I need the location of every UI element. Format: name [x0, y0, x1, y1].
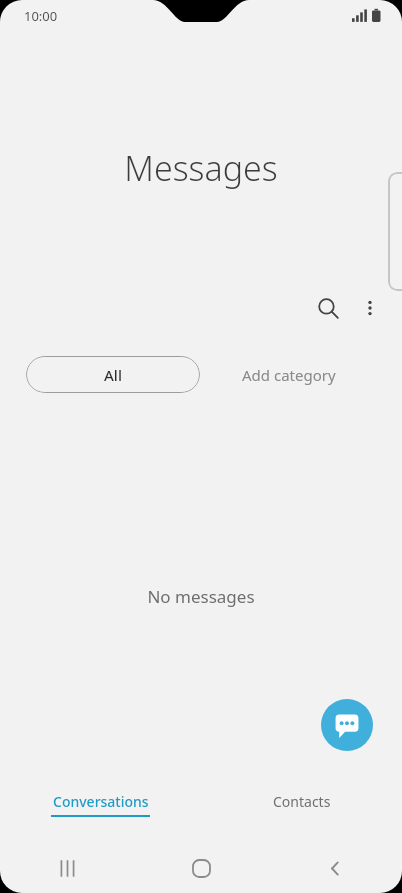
button[interactable]: Search: [308, 288, 348, 328]
staticText: Messages: [124, 145, 278, 191]
button[interactable]: All: [26, 356, 200, 393]
button[interactable]: Contacts: [201, 792, 402, 838]
button[interactable]: Back: [268, 843, 402, 893]
staticText: 10:00: [24, 7, 58, 25]
button[interactable]: More options: [350, 288, 390, 328]
staticText: No messages: [147, 585, 255, 608]
button[interactable]: Add category: [216, 356, 362, 393]
staticText: Add category: [242, 365, 336, 385]
button[interactable]: Recent apps: [0, 843, 134, 893]
staticText: Contacts: [273, 792, 331, 811]
button[interactable]: Home: [134, 843, 268, 893]
staticText: All: [104, 365, 122, 385]
button[interactable]: Conversations: [0, 792, 201, 838]
staticText: Conversations: [53, 792, 149, 811]
button[interactable]: New conversation: [321, 699, 373, 751]
